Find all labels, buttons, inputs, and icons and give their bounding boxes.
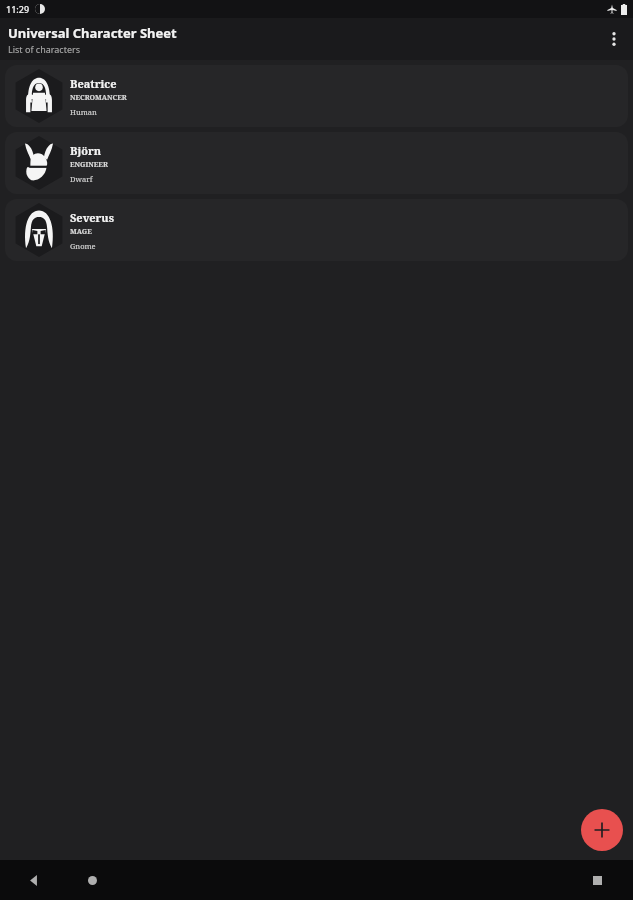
button[interactable]: Home [78,866,106,894]
button[interactable]: Back [20,866,48,894]
button[interactable]: Beatrice [5,65,628,127]
button[interactable]: Add character [581,809,623,851]
staticText: Severus [70,210,114,225]
staticText: Gnome [70,241,96,251]
staticText: Dwarf [70,174,93,184]
staticText: Beatrice [70,76,117,91]
staticText: 11:29 [6,3,30,15]
staticText: NECROMANCER [70,93,127,103]
button[interactable]: Recent apps [583,866,611,894]
staticText: Universal Character Sheet [8,24,177,42]
staticText: Human [70,107,97,117]
staticText: ENGINEER [70,160,108,170]
staticText: Björn [70,143,102,158]
button[interactable]: Severus [5,199,628,261]
staticText: List of characters [8,43,81,55]
button[interactable]: Björn [5,132,628,194]
staticText: MAGE [70,227,92,237]
button[interactable]: More options [597,22,631,56]
